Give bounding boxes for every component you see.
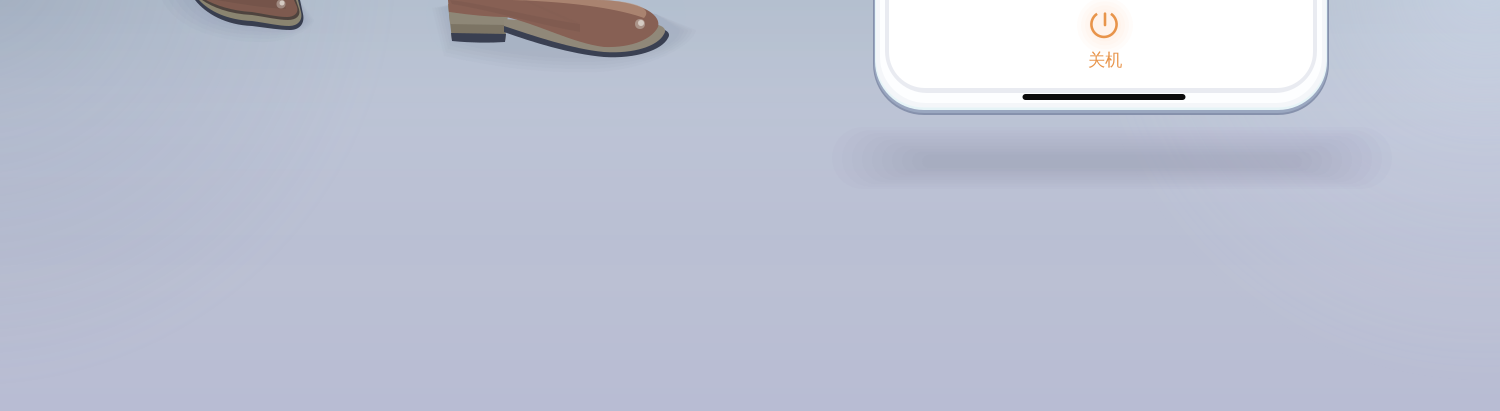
button[interactable]: Power off [1070,5,1140,77]
staticText: 关机 [1088,49,1122,71]
